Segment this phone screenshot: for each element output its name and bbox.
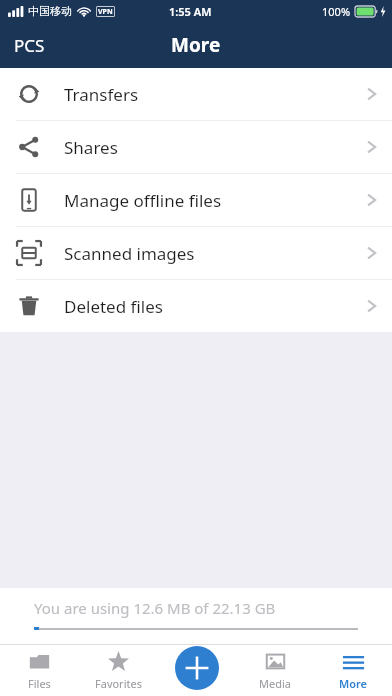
staticText: Manage offline files	[64, 189, 367, 212]
staticText: More	[171, 32, 221, 58]
staticText: PCS	[14, 34, 45, 57]
staticText: You are using 12.6 MB of 22.13 GB	[34, 598, 276, 618]
button[interactable]: Add	[175, 646, 219, 690]
button[interactable]: Favorites	[79, 644, 158, 696]
button[interactable]: Shares	[0, 121, 392, 173]
staticText: Favorites	[95, 676, 142, 691]
staticText: VPN	[98, 7, 113, 17]
staticText: Shares	[64, 136, 367, 159]
button[interactable]: Scanned images	[0, 227, 392, 279]
staticText: Files	[28, 676, 51, 691]
staticText: More	[339, 676, 367, 691]
button[interactable]: Deleted files	[0, 280, 392, 332]
staticText: 中国移动	[28, 4, 72, 18]
staticText: Transfers	[64, 83, 367, 106]
button[interactable]: Files	[0, 644, 79, 696]
staticText: Scanned images	[64, 242, 367, 265]
button[interactable]: Transfers	[0, 68, 392, 120]
staticText: Media	[259, 676, 291, 691]
staticText: 1:55 AM	[169, 4, 212, 19]
button[interactable]: More	[314, 644, 392, 696]
button[interactable]: PCS	[0, 26, 59, 65]
staticText: 100%	[322, 4, 351, 19]
staticText: Deleted files	[64, 295, 367, 318]
button[interactable]: Manage offline files	[0, 174, 392, 226]
button[interactable]: Media	[236, 644, 314, 696]
